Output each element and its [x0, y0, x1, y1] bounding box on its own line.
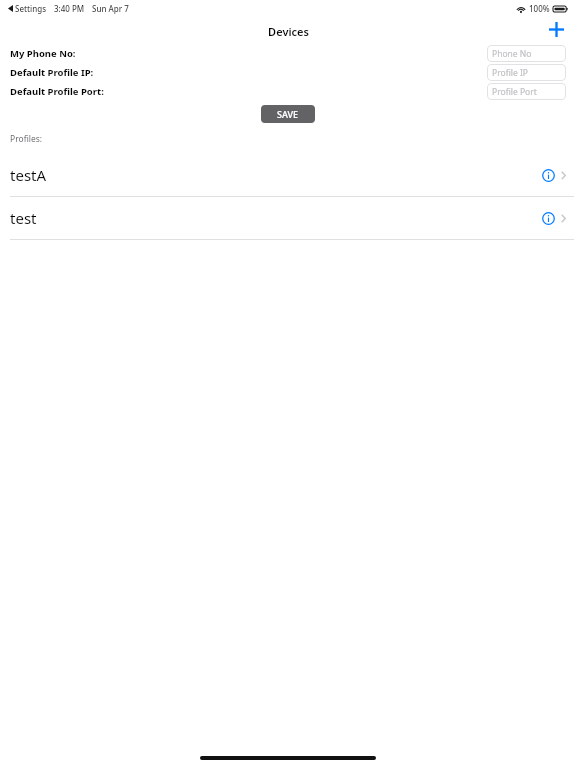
button[interactable]: Info [542, 212, 555, 225]
staticText: testA [10, 165, 542, 185]
staticText: Default Profile Port: [10, 85, 104, 98]
staticText: SAVE [277, 108, 299, 120]
button[interactable]: Profile IP [487, 64, 566, 81]
staticText: test [10, 208, 542, 228]
button[interactable]: Phone No [487, 45, 566, 62]
button[interactable]: Profile Port [487, 83, 566, 100]
staticText: Devices [268, 24, 309, 39]
button[interactable]: testA [0, 154, 576, 196]
button[interactable]: Add device [545, 18, 567, 40]
staticText: 100% [529, 3, 550, 14]
staticText: Settings [15, 3, 47, 14]
button[interactable]: SAVE [261, 105, 315, 123]
staticText: Sun Apr 7 [92, 3, 129, 14]
staticText: Default Profile IP: [10, 66, 94, 79]
button[interactable]: test [0, 197, 576, 239]
button[interactable]: Info [542, 169, 555, 182]
staticText: Profile IP [492, 67, 528, 79]
staticText: Profile Port [492, 86, 537, 98]
staticText: Profiles: [10, 133, 43, 145]
staticText: Phone No [492, 48, 532, 60]
staticText: 3:40 PM [54, 3, 85, 14]
staticText: My Phone No: [10, 47, 76, 60]
